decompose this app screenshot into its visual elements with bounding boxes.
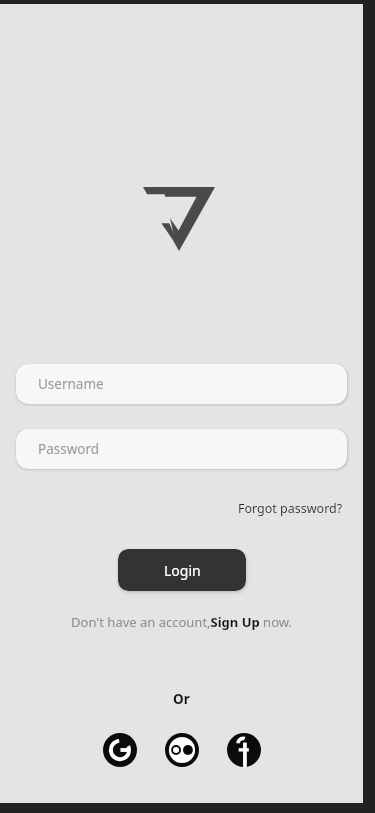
staticText: Login <box>164 561 201 580</box>
staticText: Forgot password? <box>238 500 343 517</box>
button[interactable]: Sign in with Google <box>99 729 141 771</box>
button[interactable]: Username <box>16 364 347 404</box>
staticText: Username <box>38 375 104 393</box>
button[interactable]: Sign in with Facebook <box>223 729 265 771</box>
button[interactable]: Sign in with Flickr <box>161 729 203 771</box>
staticText: Don't have an account,Sign Up now. <box>71 613 292 631</box>
button[interactable]: Login <box>118 549 246 591</box>
staticText: Or <box>173 690 190 708</box>
button[interactable]: Don't have an account,Sign Up now. <box>67 611 296 633</box>
button[interactable]: Password <box>16 429 347 469</box>
button[interactable]: Forgot password? <box>236 498 345 519</box>
staticText: Password <box>38 440 100 458</box>
